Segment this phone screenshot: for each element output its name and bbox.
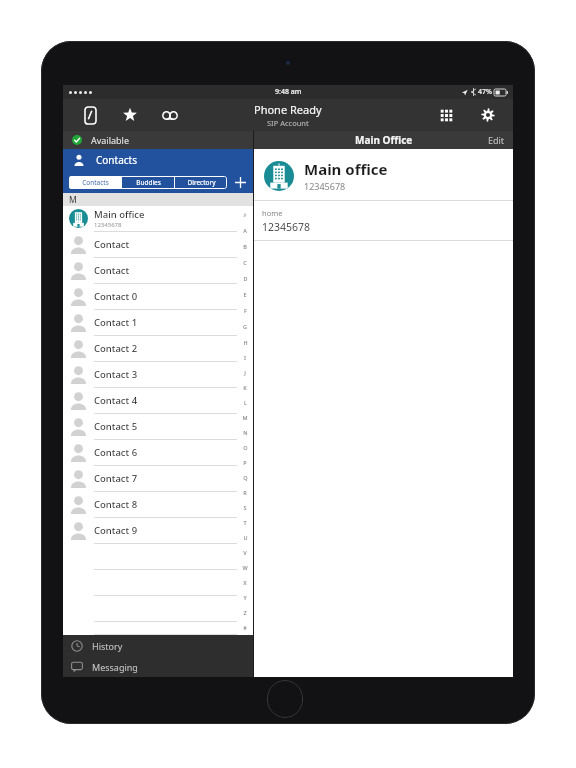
button[interactable]: F bbox=[237, 302, 253, 318]
staticText: 12345678 bbox=[262, 220, 311, 234]
button[interactable]: Contact bbox=[63, 258, 253, 284]
button[interactable]: W bbox=[237, 560, 253, 575]
button[interactable]: M bbox=[237, 410, 253, 425]
button[interactable]: Available bbox=[63, 131, 253, 149]
button[interactable]: Home bbox=[267, 680, 303, 718]
staticText: Contact 0 bbox=[94, 290, 138, 303]
button[interactable]: Edit bbox=[488, 134, 505, 146]
button[interactable]: A bbox=[237, 222, 253, 238]
button[interactable]: Keypad bbox=[433, 102, 459, 128]
button[interactable]: # bbox=[237, 620, 253, 635]
button[interactable]: Voicemail bbox=[157, 102, 183, 128]
button[interactable]: N bbox=[237, 425, 253, 440]
staticText: A bbox=[243, 227, 247, 234]
button[interactable]: Contacts bbox=[69, 176, 121, 189]
staticText: 12345678 bbox=[94, 221, 122, 229]
staticText: Buddies bbox=[136, 178, 161, 187]
staticText: home bbox=[262, 208, 283, 218]
staticText: SIP Account bbox=[267, 118, 309, 128]
button[interactable]: Main office bbox=[63, 206, 253, 232]
button[interactable]: Messaging bbox=[63, 656, 253, 677]
button[interactable]: D bbox=[237, 270, 253, 286]
button[interactable]: Contact bbox=[63, 232, 253, 258]
staticText: Contact 2 bbox=[94, 342, 138, 355]
button[interactable]: Q bbox=[237, 470, 253, 485]
button[interactable]: Settings bbox=[475, 102, 501, 128]
button[interactable]: S bbox=[237, 500, 253, 515]
button[interactable]: Contact 4 bbox=[63, 388, 253, 414]
staticText: Main office bbox=[94, 208, 145, 221]
staticText: X bbox=[243, 579, 247, 586]
button[interactable]: I bbox=[237, 350, 253, 365]
button[interactable]: X bbox=[237, 575, 253, 590]
button[interactable]: Contact 6 bbox=[63, 440, 253, 466]
button[interactable]: H bbox=[237, 334, 253, 350]
button[interactable]: History bbox=[63, 635, 253, 656]
button[interactable]: Y bbox=[237, 590, 253, 605]
staticText: L bbox=[244, 399, 247, 406]
staticText: Directory bbox=[187, 178, 216, 187]
button[interactable]: Z bbox=[237, 605, 253, 620]
staticText: Q bbox=[243, 474, 248, 481]
staticText: H bbox=[243, 339, 248, 346]
staticText: 12345678 bbox=[304, 180, 346, 192]
staticText: Contacts bbox=[82, 178, 109, 187]
button[interactable]: Contact 1 bbox=[63, 310, 253, 336]
button[interactable]: Favorites bbox=[117, 102, 143, 128]
button[interactable]: Buddies bbox=[122, 176, 174, 189]
staticText: Contact bbox=[94, 238, 130, 251]
button[interactable]: Contact 0 bbox=[63, 284, 253, 310]
button[interactable]: J bbox=[237, 365, 253, 380]
button[interactable]: Contact 8 bbox=[63, 492, 253, 518]
staticText: T bbox=[243, 519, 247, 526]
staticText: S bbox=[243, 504, 247, 511]
staticText: V bbox=[243, 549, 247, 556]
staticText: Z bbox=[243, 609, 247, 616]
staticText: Contact 5 bbox=[94, 420, 138, 433]
staticText: Main office bbox=[304, 159, 388, 179]
staticText: O bbox=[243, 444, 248, 451]
staticText: P bbox=[243, 459, 247, 466]
button[interactable]: C bbox=[237, 254, 253, 270]
button[interactable]: R bbox=[237, 485, 253, 500]
button[interactable]: Contact 7 bbox=[63, 466, 253, 492]
button[interactable]: L bbox=[237, 395, 253, 410]
staticText: K bbox=[243, 384, 247, 391]
button[interactable]: V bbox=[237, 545, 253, 560]
staticText: Edit bbox=[488, 134, 505, 146]
button[interactable]: T bbox=[237, 515, 253, 530]
button[interactable]: Contact 2 bbox=[63, 336, 253, 362]
button[interactable]: ⌕ bbox=[237, 206, 253, 222]
staticText: 9:48 am bbox=[275, 87, 302, 97]
staticText: History bbox=[92, 640, 123, 652]
staticText: Phone Ready bbox=[254, 102, 322, 117]
staticText: Contact 7 bbox=[94, 472, 138, 485]
button[interactable]: Contact 3 bbox=[63, 362, 253, 388]
button[interactable]: G bbox=[237, 318, 253, 334]
staticText: Contact 1 bbox=[94, 316, 138, 329]
staticText: M bbox=[242, 414, 248, 421]
staticText: I bbox=[244, 354, 246, 361]
button[interactable]: home bbox=[262, 208, 513, 234]
staticText: U bbox=[243, 534, 248, 541]
button[interactable]: Directory bbox=[175, 176, 227, 189]
button[interactable]: Contact 9 bbox=[63, 518, 253, 544]
button[interactable]: Contact 5 bbox=[63, 414, 253, 440]
button[interactable]: Dial pad bbox=[77, 102, 103, 128]
staticText: N bbox=[243, 429, 248, 436]
button[interactable]: O bbox=[237, 440, 253, 455]
staticText: Contacts bbox=[96, 153, 137, 167]
staticText: G bbox=[243, 323, 247, 330]
staticText: Contact bbox=[94, 264, 130, 277]
button[interactable]: B bbox=[237, 238, 253, 254]
button[interactable]: Add contact bbox=[227, 171, 253, 193]
button[interactable]: K bbox=[237, 380, 253, 395]
staticText: Messaging bbox=[92, 661, 138, 673]
staticText: # bbox=[243, 624, 247, 631]
staticText: Contact 9 bbox=[94, 524, 138, 537]
button[interactable]: E bbox=[237, 286, 253, 302]
button[interactable]: Contacts bbox=[63, 149, 253, 171]
staticText: W bbox=[242, 564, 248, 571]
button[interactable]: U bbox=[237, 530, 253, 545]
button[interactable]: P bbox=[237, 455, 253, 470]
